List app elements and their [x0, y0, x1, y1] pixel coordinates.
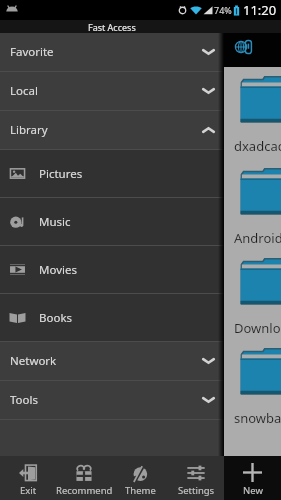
button[interactable]: Settings [168, 456, 224, 500]
button[interactable]: Music [0, 198, 224, 245]
button[interactable]: Local [0, 72, 224, 110]
staticText: Recommend [56, 484, 112, 497]
staticText: snowball [234, 409, 281, 427]
button[interactable]: Download [0, 256, 281, 337]
button[interactable]: snowball [0, 346, 281, 427]
staticText: dxadcache [234, 137, 281, 155]
button[interactable]: Tools [0, 381, 224, 419]
button[interactable]: Library [0, 111, 224, 149]
staticText: Android [234, 229, 281, 247]
staticText: Books [39, 310, 73, 326]
button[interactable]: Network [0, 342, 224, 380]
staticText: Network [10, 353, 57, 369]
button[interactable]: Android [0, 166, 281, 247]
button[interactable]: dxadcache [0, 74, 281, 155]
staticText: 74% [214, 4, 232, 16]
staticText: Settings [178, 484, 215, 497]
button[interactable]: Movies [0, 246, 224, 293]
staticText: Music [39, 214, 71, 230]
staticText: New [243, 484, 263, 497]
button[interactable]: Favorite [0, 33, 224, 71]
staticText: Theme [125, 484, 156, 497]
staticText: Pictures [39, 166, 83, 182]
staticText: Movies [39, 262, 77, 278]
staticText: Exit [20, 484, 37, 497]
button[interactable]: Remote devices [231, 33, 259, 61]
button[interactable]: Pictures [0, 150, 224, 197]
button[interactable]: Exit [0, 456, 56, 500]
staticText: Library [10, 122, 48, 138]
staticText: Download [234, 319, 281, 337]
staticText: Favorite [10, 44, 54, 60]
staticText: Fast Access [88, 21, 136, 33]
staticText: Tools [10, 392, 38, 408]
button[interactable]: Recommend [56, 456, 112, 500]
button[interactable]: New [224, 456, 281, 500]
staticText: 11:20 [243, 1, 277, 19]
button[interactable]: Theme [112, 456, 168, 500]
staticText: Local [10, 83, 38, 99]
button[interactable]: Books [0, 294, 224, 341]
